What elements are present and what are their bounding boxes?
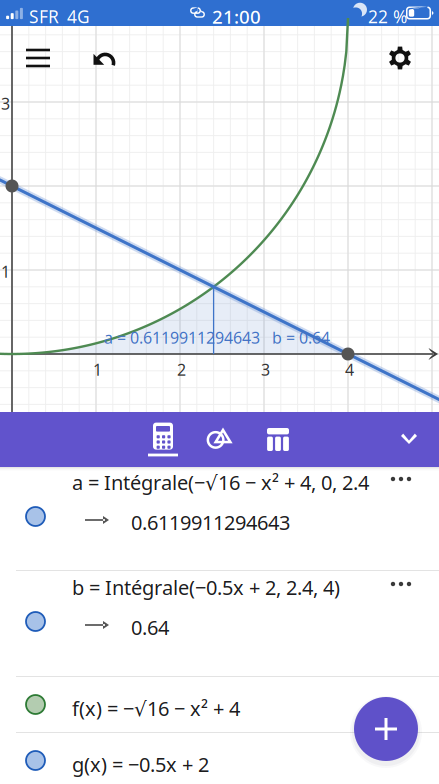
button[interactable]: Collapse [385, 413, 433, 467]
button[interactable]: a = Intégrale(−√16 − x² + 4, 0, 2.4 [0, 466, 439, 571]
staticText: a = 0.6119911294643 [104, 327, 260, 348]
button[interactable]: Geometry [191, 412, 249, 467]
staticText: b = 0.64 [272, 327, 330, 348]
staticText: 3 [261, 359, 270, 380]
button[interactable]: Menu [16, 36, 60, 80]
staticText: a = Intégrale(−√16 − x² + 4, 0, 2.4 [72, 469, 369, 496]
staticText: 3 [1, 93, 10, 114]
button[interactable]: g(x) = −0.5x + 2 [0, 733, 439, 784]
staticText: 0.6119911294643 [131, 509, 290, 536]
staticText: 0.64 [131, 614, 169, 641]
button[interactable]: Undo [82, 36, 126, 80]
staticText: 4G [67, 5, 90, 28]
button[interactable]: b = Intégrale(−0.5x + 2, 2.4, 4) [0, 571, 439, 677]
button[interactable]: Table [249, 412, 307, 467]
button[interactable]: f(x) = −√16 − x² + 4 [0, 677, 439, 733]
button[interactable]: Calculator [134, 412, 192, 467]
staticText: 2 [177, 359, 186, 380]
staticText: 1 [93, 359, 102, 380]
staticText: 4 [345, 359, 354, 380]
staticText: 21:00 [212, 4, 261, 29]
staticText: 22 % [368, 5, 407, 28]
button[interactable]: Add [354, 697, 418, 761]
button[interactable]: Settings [378, 36, 422, 80]
staticText: b = Intégrale(−0.5x + 2, 2.4, 4) [72, 574, 340, 601]
staticText: 1 [1, 261, 10, 282]
staticText: f(x) = −√16 − x² + 4 [72, 695, 240, 722]
staticText: g(x) = −0.5x + 2 [72, 751, 209, 778]
staticText: SFR [29, 5, 59, 28]
